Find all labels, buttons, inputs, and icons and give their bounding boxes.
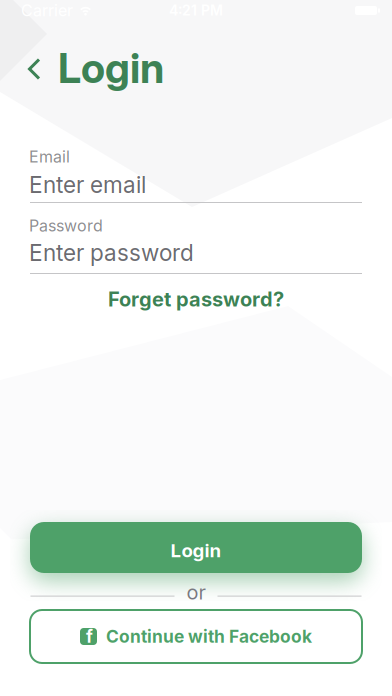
button[interactable]: Enter password <box>29 239 361 266</box>
staticText: Continue with Facebook <box>106 626 312 647</box>
button[interactable]: Login <box>30 522 362 573</box>
staticText: Carrier <box>21 1 73 20</box>
button[interactable]: f <box>30 610 362 663</box>
staticText: Email <box>29 147 70 166</box>
staticText: Enter password <box>29 239 194 266</box>
staticText: Enter email <box>29 171 146 198</box>
button[interactable]: Forget password? <box>0 287 392 311</box>
staticText: or <box>186 580 205 604</box>
staticText: Forget password? <box>108 287 284 311</box>
button[interactable]: Enter email <box>29 171 361 198</box>
button[interactable]: Login <box>0 43 392 93</box>
staticText: Login <box>170 539 221 562</box>
staticText: Login <box>58 43 164 93</box>
staticText: f <box>86 626 93 647</box>
staticText: Password <box>29 216 103 235</box>
